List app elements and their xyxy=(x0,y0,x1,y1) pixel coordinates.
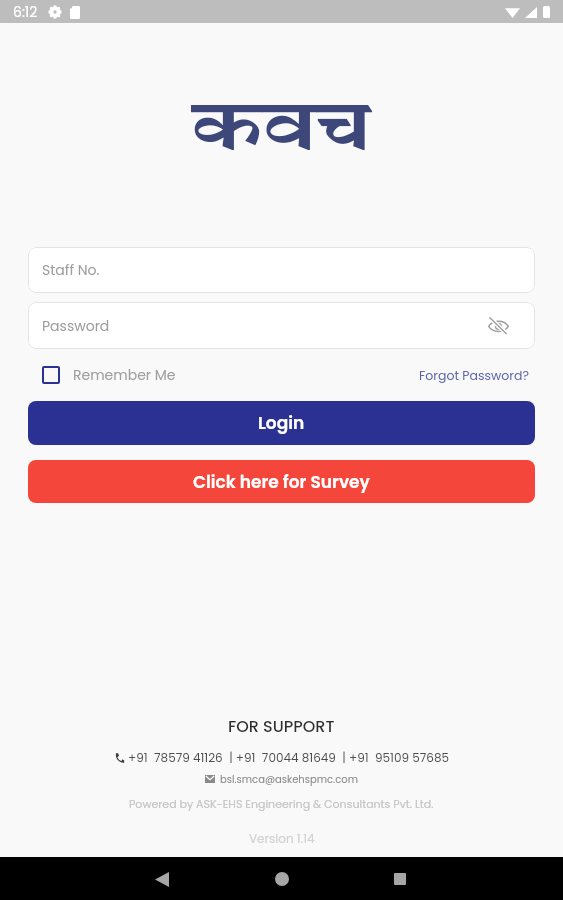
button[interactable]: Back xyxy=(149,866,175,892)
button[interactable]: Password xyxy=(28,302,535,349)
button[interactable]: Remember Me xyxy=(28,365,176,385)
staticText: Click here for Survey xyxy=(193,470,370,494)
button[interactable]: Login xyxy=(28,401,535,445)
button[interactable]: Forgot Password? xyxy=(419,367,535,384)
staticText: Password xyxy=(42,316,110,336)
staticText: 6:12 xyxy=(13,2,38,22)
staticText: Remember Me xyxy=(73,365,176,385)
staticText: bsl.smca@askehspmc.com xyxy=(220,772,358,786)
staticText: कवच xyxy=(191,76,373,166)
button[interactable]: Staff No. xyxy=(28,247,535,293)
staticText: +91 78579 41126 | +91 70044 81649 | +91 … xyxy=(128,749,450,766)
staticText: Forgot Password? xyxy=(419,367,529,384)
button[interactable]: Home xyxy=(269,866,295,892)
staticText: Login xyxy=(258,411,305,435)
button[interactable]: Click here for Survey xyxy=(28,460,535,503)
staticText: Staff No. xyxy=(42,260,100,280)
staticText: Version 1.14 xyxy=(249,830,315,847)
staticText: Powered by ASK-EHS Engineering & Consult… xyxy=(129,796,434,811)
button[interactable]: Show password xyxy=(483,311,513,341)
button[interactable]: Recent apps xyxy=(387,866,413,892)
staticText: FOR SUPPORT xyxy=(228,715,335,737)
